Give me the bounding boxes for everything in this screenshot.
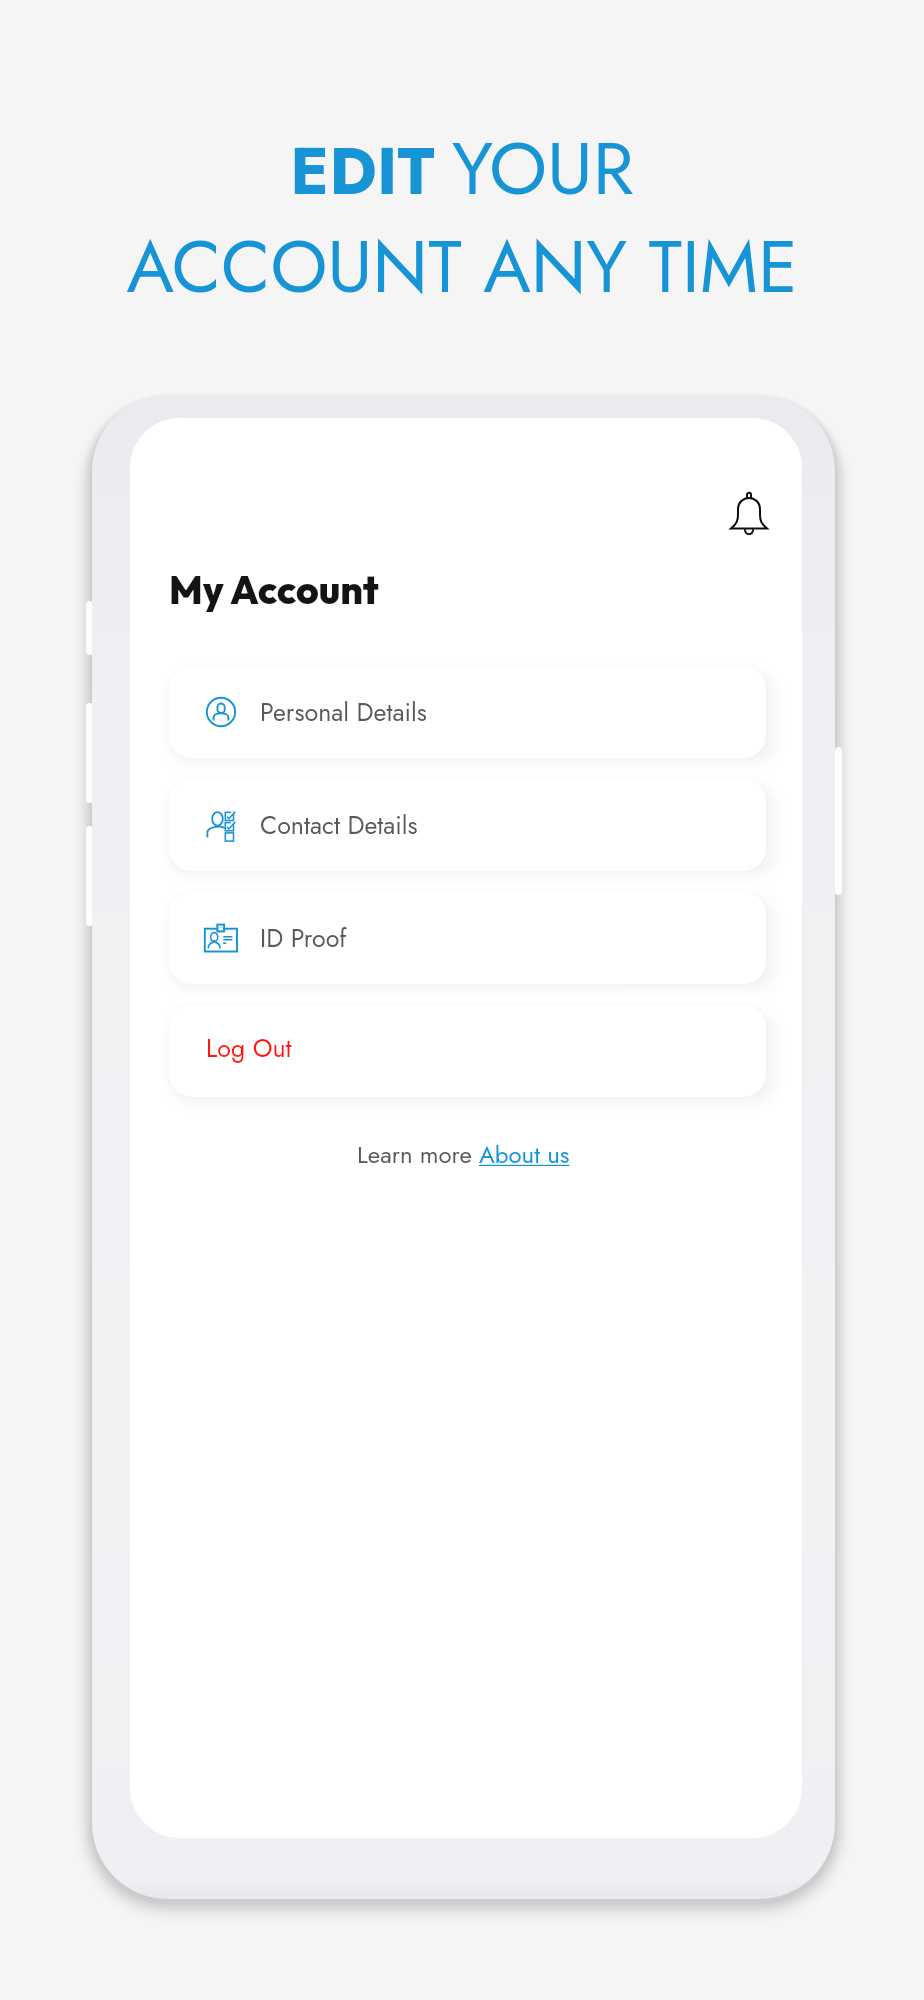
staticText: ID Proof <box>260 920 347 956</box>
button[interactable]: Log Out <box>169 1005 766 1097</box>
staticText: Log Out <box>206 1030 292 1066</box>
staticText: My Account <box>169 565 379 614</box>
button[interactable]: Notifications <box>716 487 782 553</box>
staticText: EDIT <box>290 124 435 218</box>
button[interactable]: Learn more About us <box>357 1137 570 1172</box>
staticText: YOUR <box>452 116 634 221</box>
staticText: Contact Details <box>260 807 418 843</box>
staticText: ACCOUNT ANY TIME <box>126 215 798 319</box>
button[interactable]: Contact Details <box>169 779 766 871</box>
button[interactable]: Personal Details <box>169 666 766 758</box>
button[interactable]: ID Proof <box>169 892 766 984</box>
staticText: Personal Details <box>260 694 427 730</box>
